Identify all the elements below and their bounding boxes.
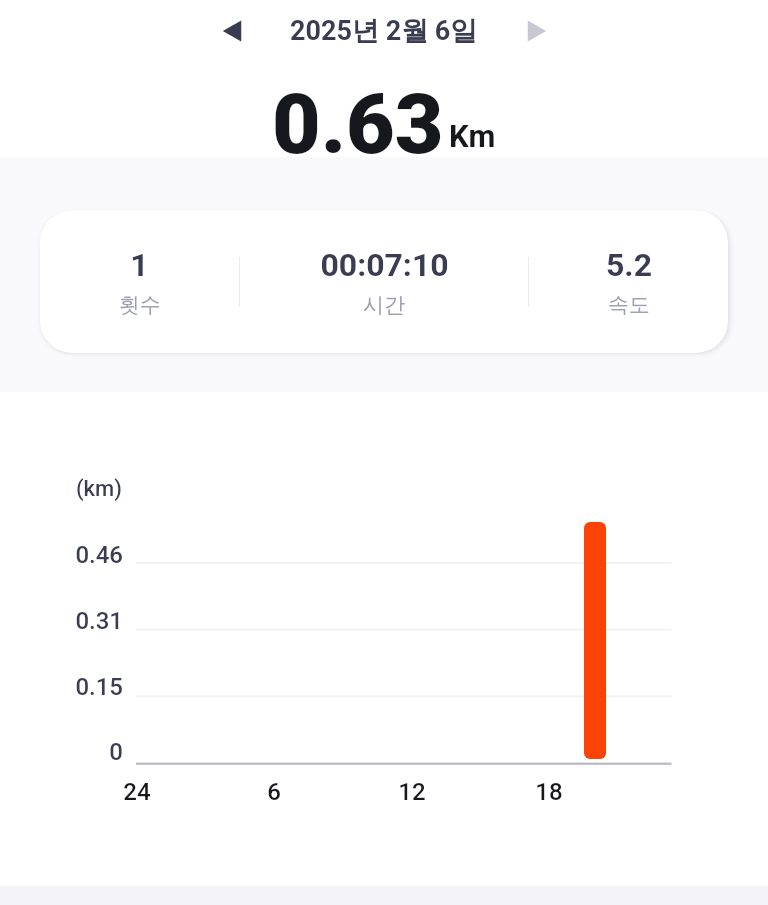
staticText: 24 bbox=[107, 778, 167, 806]
staticText: 시간 bbox=[363, 292, 405, 318]
staticText: Km bbox=[449, 118, 496, 154]
button[interactable]: Previous day bbox=[204, 3, 260, 59]
staticText: 5.2 bbox=[606, 246, 652, 284]
staticText: 12 bbox=[382, 778, 442, 806]
staticText: 6 bbox=[244, 778, 304, 806]
staticText: 0.46 bbox=[0, 541, 123, 569]
button[interactable]: 1 bbox=[40, 246, 239, 318]
staticText: 속도 bbox=[608, 292, 650, 318]
staticText: 18 bbox=[519, 778, 579, 806]
staticText: 0.15 bbox=[0, 673, 123, 701]
button[interactable]: Next day bbox=[508, 3, 564, 59]
button[interactable]: 5.2 bbox=[529, 246, 728, 318]
button[interactable]: 00:07:10 bbox=[240, 246, 528, 318]
staticText: 00:07:10 bbox=[320, 246, 449, 284]
staticText: 1 bbox=[130, 246, 149, 284]
staticText: 0.31 bbox=[0, 607, 123, 635]
staticText: 0 bbox=[0, 738, 123, 766]
staticText: (km) bbox=[76, 476, 122, 502]
staticText: 0.63 bbox=[272, 75, 444, 173]
staticText: 횟수 bbox=[119, 292, 161, 318]
staticText: 2025년 2월 6일 bbox=[290, 14, 478, 48]
